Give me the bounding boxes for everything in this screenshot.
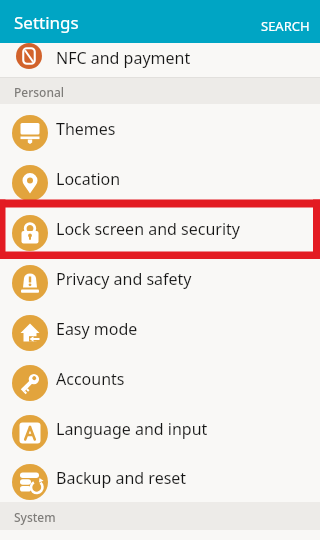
staticText: Backup and reset [56,467,187,489]
button[interactable]: Themes [0,104,320,154]
button[interactable]: NFC and payment [0,43,320,77]
staticText: Privacy and safety [56,268,192,290]
staticText: System [14,509,56,525]
staticText: Personal [14,84,65,100]
staticText: Language and input [56,418,208,440]
button[interactable]: Backup and reset [0,454,320,502]
staticText: SEARCH [261,17,310,35]
staticText: Settings [14,11,79,34]
staticText: Themes [56,118,116,140]
staticText: NFC and payment [56,47,191,69]
button[interactable]: Privacy and safety [0,254,320,304]
button[interactable]: Lock screen and security [0,204,320,254]
staticText: Easy mode [56,318,138,340]
button[interactable]: SEARCH [251,0,320,43]
button[interactable]: Easy mode [0,304,320,354]
staticText: Accounts [56,368,125,390]
staticText: Lock screen and security [56,218,240,240]
staticText: Location [56,168,121,190]
button[interactable]: Accounts [0,354,320,404]
button[interactable]: Location [0,154,320,204]
button[interactable]: Language and input [0,404,320,454]
